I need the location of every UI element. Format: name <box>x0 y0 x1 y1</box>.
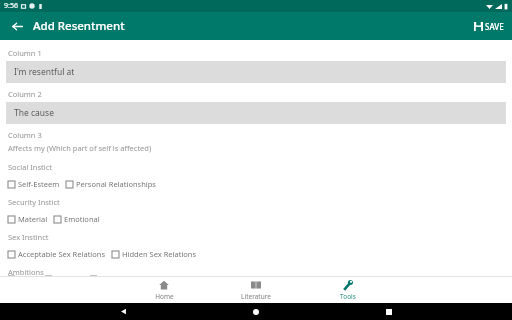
staticText: Self-Esteem <box>18 179 60 189</box>
staticText: Column 2 <box>8 89 42 99</box>
staticText: Home <box>155 292 174 301</box>
staticText: I'm resentful at <box>14 66 75 78</box>
button[interactable]: Self-Esteem <box>8 179 66 189</box>
staticText: Column 3 <box>8 130 42 140</box>
staticText: Material <box>18 214 48 224</box>
button[interactable]: Home <box>142 277 186 303</box>
button[interactable]: Hidden Sex Relations <box>112 249 203 259</box>
staticText: Affects my (Which part of self is affect… <box>8 143 152 153</box>
staticText: Ambitions <box>8 267 44 276</box>
staticText: 9:56 <box>4 1 18 11</box>
staticText: Emotional <box>64 214 100 224</box>
staticText: The cause <box>14 107 54 119</box>
button[interactable]: Recent apps <box>379 303 399 320</box>
button[interactable]: Back <box>6 15 28 37</box>
staticText: Literature <box>241 292 271 301</box>
button[interactable]: Literature <box>234 277 278 303</box>
button[interactable]: Acceptable Sex Relations <box>8 249 112 259</box>
staticText: Add Resentment <box>33 18 125 34</box>
staticText: SAVE <box>485 21 504 32</box>
staticText: Sex Instinct <box>8 232 49 242</box>
staticText: Social Instict <box>8 162 53 172</box>
staticText: Tools <box>340 292 356 301</box>
staticText: Hidden Sex Relations <box>122 249 197 259</box>
button[interactable]: SAVE <box>471 18 507 35</box>
button[interactable]: Personal Relationships <box>66 179 162 189</box>
staticText: Acceptable Sex Relations <box>18 249 106 259</box>
staticText: Personal Relationships <box>76 179 156 189</box>
staticText: Column 1 <box>8 48 42 58</box>
button[interactable]: Home <box>246 303 266 320</box>
button[interactable]: Back <box>113 303 133 320</box>
button[interactable]: Tools <box>326 277 370 303</box>
button[interactable]: Emotional <box>54 214 106 224</box>
button[interactable]: Material <box>8 214 54 224</box>
button[interactable]: The cause <box>6 102 506 124</box>
button[interactable]: I'm resentful at <box>6 61 506 83</box>
staticText: Security Instict <box>8 197 60 207</box>
